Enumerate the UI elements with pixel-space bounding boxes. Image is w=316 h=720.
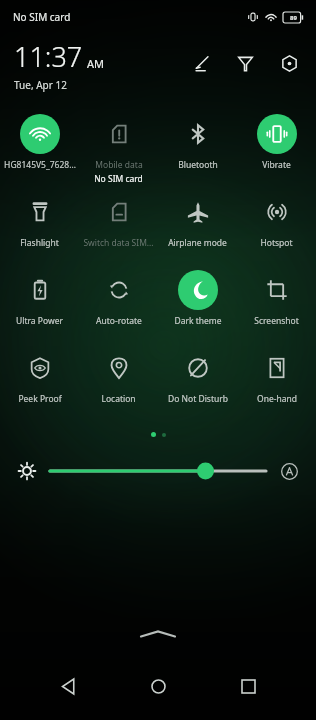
staticText: Bluetooth xyxy=(178,159,218,171)
button[interactable]: Home xyxy=(136,666,180,706)
staticText: Peek Proof xyxy=(18,393,62,405)
button[interactable]: Edit xyxy=(188,50,214,76)
button[interactable]: Peek Proof xyxy=(0,342,79,405)
staticText: Location xyxy=(101,393,136,405)
button[interactable]: Bluetooth xyxy=(158,108,237,171)
button[interactable]: HG8145V5_7628… xyxy=(0,108,79,171)
button[interactable]: Do Not Disturb xyxy=(158,342,237,405)
button[interactable]: Back xyxy=(46,666,90,706)
staticText: HG8145V5_7628… xyxy=(4,159,76,171)
staticText: AM xyxy=(87,56,105,71)
staticText: One-hand xyxy=(257,393,297,405)
button[interactable]: Ultra Power xyxy=(0,264,79,327)
button[interactable]: Brightness xyxy=(14,458,40,484)
button[interactable]: Airplane mode xyxy=(158,186,237,249)
staticText: Mobile data xyxy=(95,159,143,171)
button[interactable]: One-hand xyxy=(237,342,316,405)
staticText: 11:37 xyxy=(14,38,83,75)
button[interactable]: Dark theme xyxy=(158,264,237,327)
staticText: Do Not Disturb xyxy=(168,393,228,405)
staticText: Dark theme xyxy=(174,315,222,327)
staticText: Ultra Power xyxy=(16,315,63,327)
staticText: Hotspot xyxy=(260,237,293,249)
staticText: Airplane mode xyxy=(168,237,227,249)
button[interactable]: Location xyxy=(79,342,158,405)
staticText: Vibrate xyxy=(262,159,291,171)
button[interactable]: Auto-rotate xyxy=(79,264,158,327)
button[interactable]: Hotspot xyxy=(237,186,316,249)
button[interactable]: Mobile data xyxy=(79,108,158,185)
button[interactable]: Auto brightness xyxy=(276,458,302,484)
button[interactable] xyxy=(50,459,266,483)
staticText: Flashlight xyxy=(20,237,59,249)
staticText: Switch data SIM… xyxy=(83,237,154,249)
button[interactable]: Recents xyxy=(226,666,270,706)
staticText: No SIM card xyxy=(94,173,143,185)
staticText: Auto-rotate xyxy=(96,315,142,327)
button[interactable]: Screenshot xyxy=(237,264,316,327)
button[interactable]: Settings xyxy=(276,50,302,76)
staticText: No SIM card xyxy=(13,10,71,24)
button[interactable]: Vibrate xyxy=(237,108,316,171)
staticText: Screenshot xyxy=(254,315,299,327)
button[interactable]: Switch data SIM… xyxy=(79,186,158,249)
button[interactable]: Filter xyxy=(232,50,258,76)
staticText: Tue, Apr 12 xyxy=(14,78,67,92)
staticText: 89 xyxy=(290,14,297,22)
button[interactable]: Flashlight xyxy=(0,186,79,249)
